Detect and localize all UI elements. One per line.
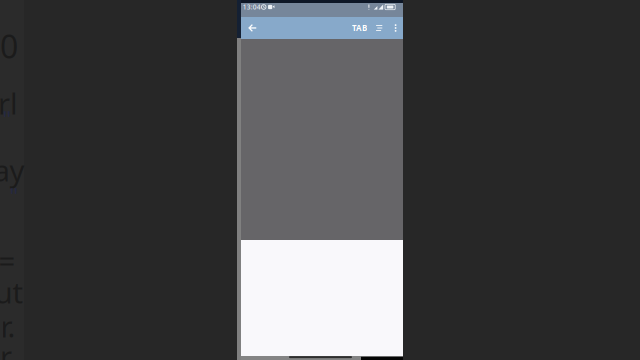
button[interactable]: TAB <box>352 17 367 39</box>
staticText: " <box>2 105 11 133</box>
button[interactable]: Back <box>244 17 261 39</box>
staticText: 13:04 <box>243 3 261 11</box>
button[interactable]: More options <box>390 17 401 39</box>
staticText: = <box>0 240 15 279</box>
staticText: r <box>0 336 12 360</box>
staticText: TAB <box>352 23 367 33</box>
staticText: ay <box>0 150 24 189</box>
staticText: " <box>9 182 18 210</box>
button[interactable]: Filter <box>373 17 386 39</box>
staticText: ut <box>0 272 23 311</box>
staticText: 0 <box>0 25 18 67</box>
staticText: rl <box>0 83 18 122</box>
staticText: r. <box>0 306 15 345</box>
